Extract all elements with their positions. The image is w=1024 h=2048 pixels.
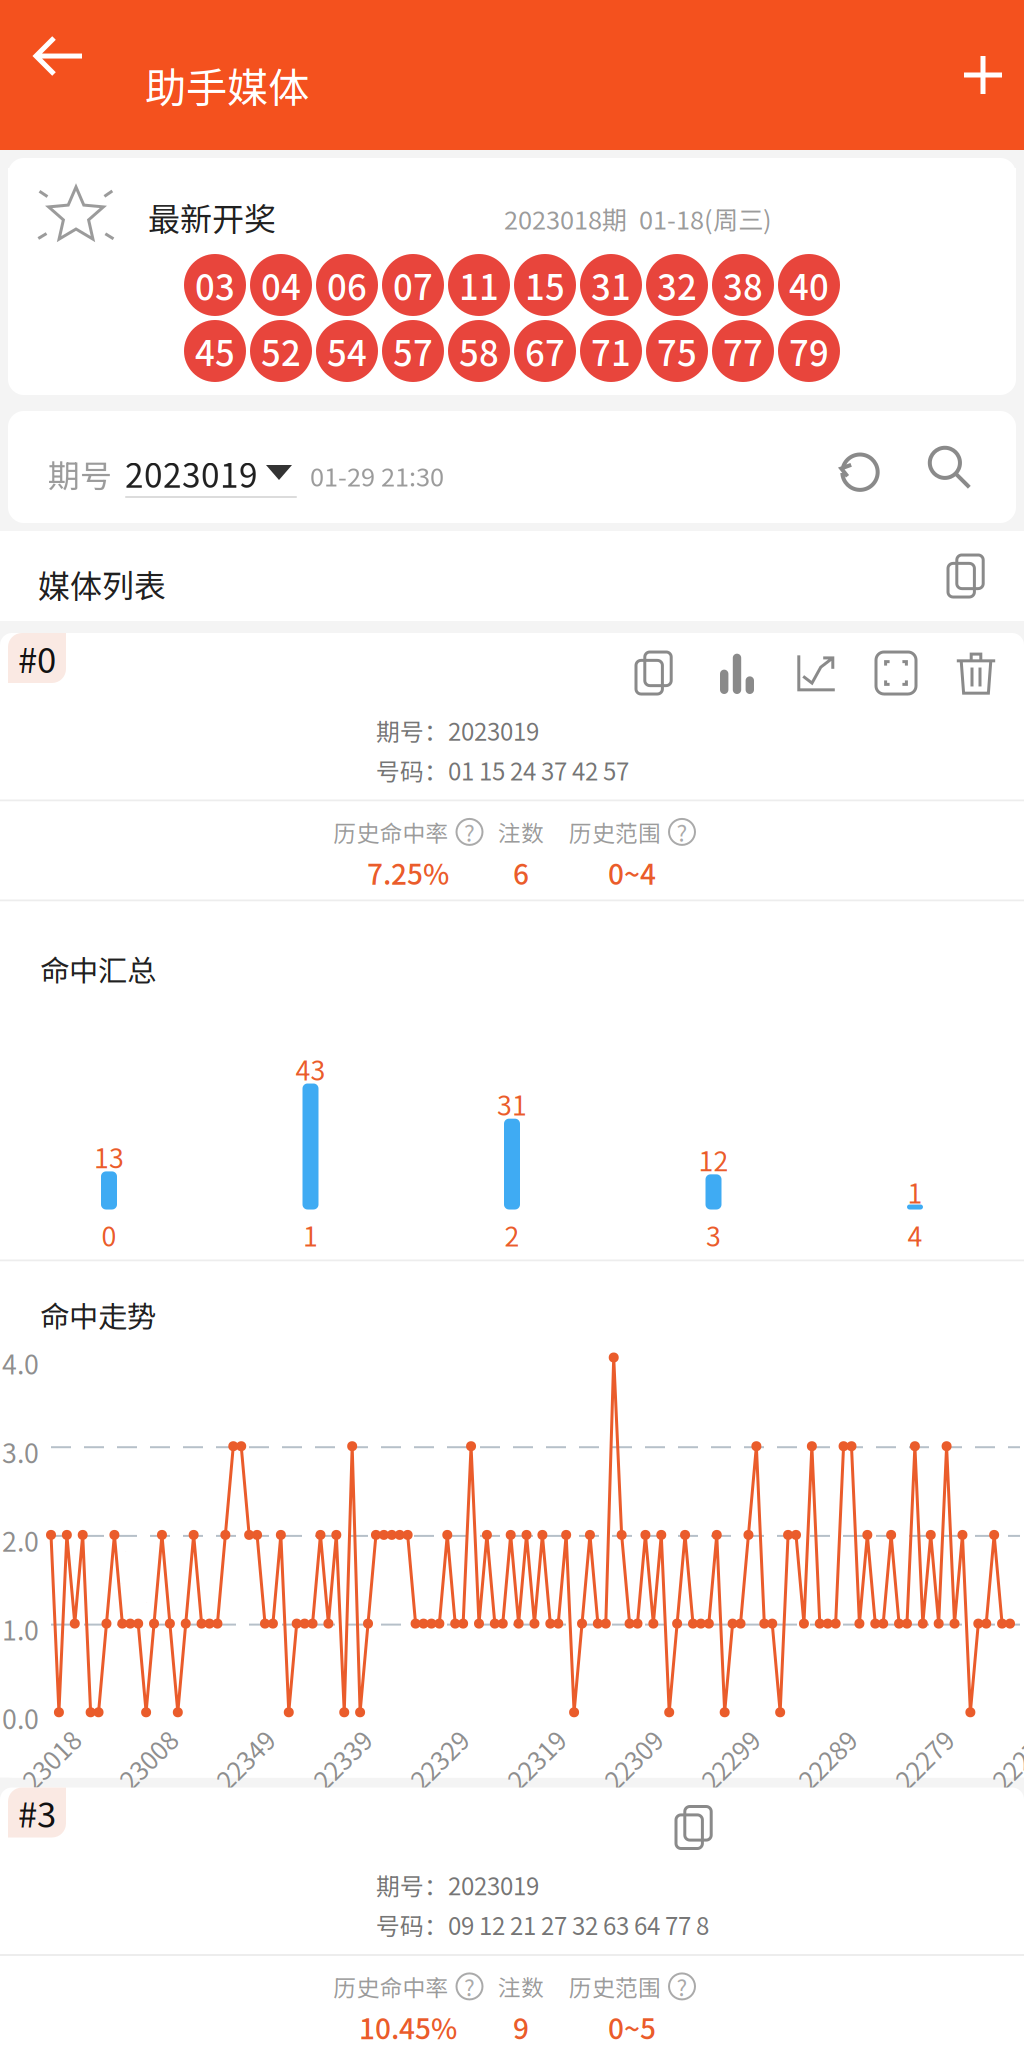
staticText: ?	[676, 815, 687, 848]
staticText: 22349	[210, 1741, 280, 1778]
button[interactable]: Copy	[656, 1787, 736, 1867]
staticText: 57	[393, 326, 433, 376]
staticText: 2.0	[2, 1521, 39, 1559]
button[interactable]: Reset	[816, 411, 904, 523]
staticText: 22339	[307, 1741, 377, 1778]
staticText: 2023018期 01-18(周三)	[504, 200, 772, 237]
staticText: #0	[18, 633, 56, 683]
staticText: 6	[513, 852, 529, 893]
staticText: 22329	[404, 1741, 474, 1778]
staticText: ?	[676, 1970, 687, 2003]
staticText: 03	[195, 260, 235, 310]
staticText: 15	[525, 260, 565, 310]
staticText: 命中走势	[40, 1293, 156, 1336]
staticText: 0.0	[2, 1698, 39, 1737]
staticText: 32	[657, 260, 697, 310]
staticText: 31	[591, 260, 631, 310]
staticText: 52	[261, 326, 301, 376]
staticText: 22289	[792, 1741, 862, 1778]
staticText: 助手媒体	[145, 55, 309, 115]
staticText: 4	[907, 1215, 922, 1254]
staticText: 历史命中率	[333, 1970, 448, 2003]
staticText: 77	[723, 326, 763, 376]
staticText: 38	[723, 260, 763, 310]
button[interactable]: Copy	[616, 633, 696, 713]
button[interactable]: Back	[4, 0, 114, 112]
staticText: 67	[525, 326, 565, 376]
button[interactable]: Add	[942, 18, 1024, 132]
staticText: 期号	[48, 451, 112, 497]
staticText: 最新开奖	[148, 194, 276, 240]
staticText: 0	[101, 1215, 116, 1254]
staticText: 3.0	[2, 1432, 39, 1471]
staticText: 2023019	[125, 449, 258, 497]
staticText: 号码：09 12 21 27 32 63 64 77 8	[376, 1907, 709, 1942]
staticText: 0~5	[608, 2007, 656, 2047]
staticText: ?	[464, 815, 475, 848]
button[interactable]: Bar chart	[696, 633, 776, 713]
staticText: 01-29 21:30	[310, 457, 444, 494]
staticText: 历史范围	[569, 815, 661, 848]
staticText: 命中汇总	[40, 947, 156, 990]
staticText: 历史命中率	[333, 815, 448, 848]
button[interactable]: Trend	[776, 633, 856, 713]
button[interactable]: Delete	[936, 633, 1016, 713]
staticText: 22299	[695, 1741, 765, 1778]
staticText: ?	[464, 1970, 475, 2003]
button[interactable]: Expand	[856, 633, 936, 713]
staticText: 期号：2023019	[376, 1867, 539, 1902]
staticText: 22319	[501, 1741, 571, 1778]
staticText: 4.0	[2, 1343, 39, 1382]
staticText: 0~4	[608, 852, 656, 893]
staticText: 12	[698, 1140, 728, 1179]
staticText: 11	[459, 260, 499, 310]
staticText: 54	[327, 326, 367, 376]
staticText: 22279	[889, 1741, 959, 1778]
staticText: 75	[657, 326, 697, 376]
staticText: 22270	[986, 1741, 1024, 1778]
staticText: 43	[295, 1049, 325, 1088]
staticText: 10.45%	[359, 2007, 457, 2047]
staticText: 45	[195, 326, 235, 376]
staticText: 31	[497, 1085, 527, 1123]
staticText: 40	[789, 260, 829, 310]
staticText: 媒体列表	[38, 561, 166, 607]
staticText: 7.25%	[367, 852, 449, 893]
staticText: 1	[303, 1215, 318, 1254]
staticText: #3	[18, 1787, 56, 1838]
staticText: 注数	[498, 1970, 544, 2003]
staticText: 号码：01 15 24 37 42 57	[376, 753, 629, 788]
staticText: 9	[513, 2007, 529, 2047]
staticText: 13	[94, 1137, 124, 1176]
button[interactable]: Copy list	[926, 530, 1010, 622]
staticText: 1.0	[2, 1610, 39, 1648]
staticText: 22309	[598, 1741, 668, 1778]
staticText: 71	[591, 326, 631, 376]
staticText: 2	[504, 1215, 519, 1254]
staticText: 23018	[16, 1741, 86, 1778]
staticText: 58	[459, 326, 499, 376]
staticText: 04	[261, 260, 301, 310]
staticText: 期号：2023019	[376, 713, 539, 748]
staticText: 注数	[498, 815, 544, 848]
staticText: 79	[789, 326, 829, 376]
staticText: 历史范围	[569, 1970, 661, 2003]
button[interactable]: Search	[904, 411, 992, 523]
staticText: 23008	[113, 1741, 183, 1778]
staticText: 07	[393, 260, 433, 310]
staticText: 3	[706, 1215, 721, 1254]
staticText: 1	[907, 1173, 922, 1211]
staticText: 06	[327, 260, 367, 310]
